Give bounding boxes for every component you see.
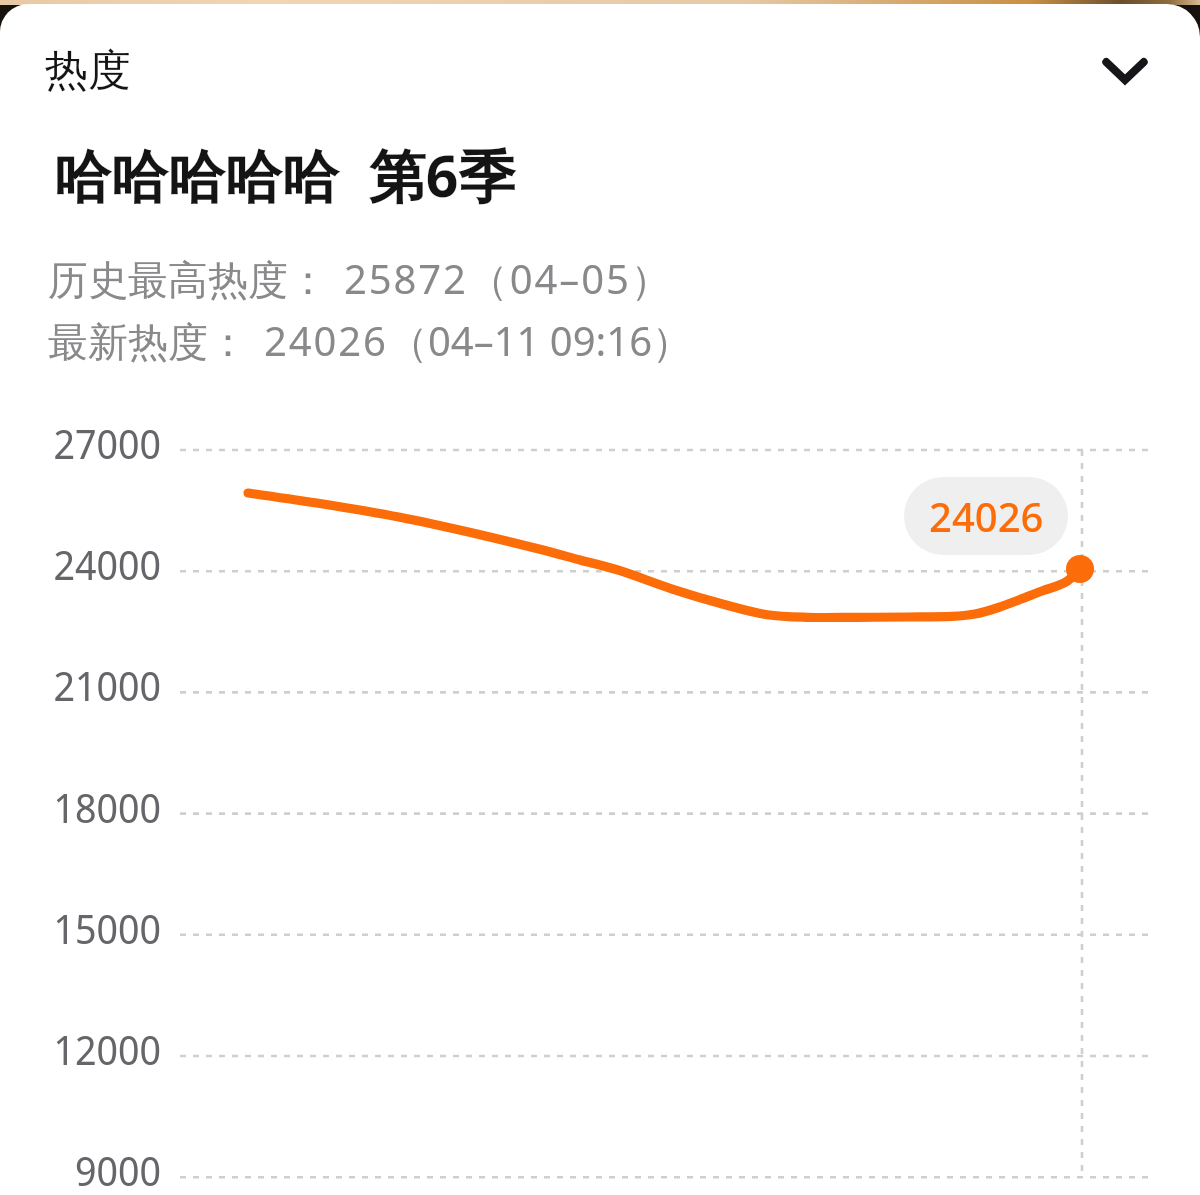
staticText: 24000 (30, 537, 161, 591)
staticText: 18000 (30, 780, 161, 834)
button[interactable]: 热度 (0, 12, 1200, 128)
staticText: 历史最高热度：25872（04–05） (48, 251, 673, 306)
staticText: 哈哈哈哈哈 第6季 (54, 136, 516, 214)
staticText: 12000 (30, 1022, 161, 1076)
staticText: 热度 (45, 44, 131, 98)
staticText: 27000 (30, 416, 161, 470)
staticText: 9000 (30, 1143, 161, 1195)
button[interactable]: Collapse section (1080, 26, 1169, 115)
staticText: 24026 (929, 489, 1044, 543)
staticText: 最新热度：24026（04–11 09:16） (48, 313, 693, 368)
staticText: 21000 (30, 658, 161, 712)
staticText: 15000 (30, 901, 161, 955)
